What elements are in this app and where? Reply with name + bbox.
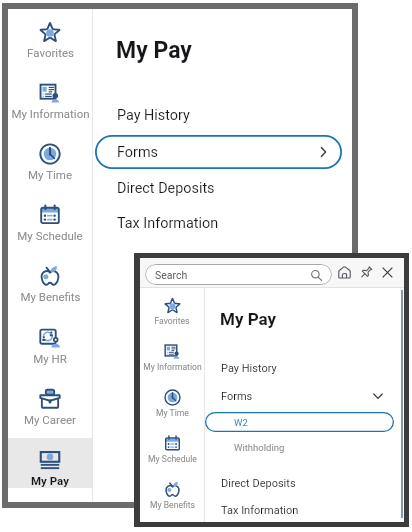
button[interactable]: My Benefits [8, 254, 92, 304]
staticText: Search [155, 269, 188, 281]
button[interactable]: My Schedule [140, 429, 204, 465]
button[interactable]: Close [377, 262, 398, 283]
button[interactable]: My Time [140, 383, 204, 419]
staticText: My Time [28, 168, 72, 181]
staticText: My Pay [31, 474, 69, 487]
staticText: Forms [117, 144, 158, 161]
staticText: Favorites [27, 46, 74, 59]
staticText: Tax Information [221, 504, 299, 517]
button[interactable]: My Career [8, 377, 92, 427]
button[interactable]: Tax Information [95, 206, 342, 240]
staticText: Tax Information [117, 215, 219, 232]
button[interactable]: My Pay [8, 438, 92, 488]
staticText: My HR [33, 352, 67, 365]
staticText: My Time [156, 408, 189, 418]
button[interactable]: Favorites [140, 291, 204, 327]
button[interactable]: My Information [8, 71, 92, 121]
button[interactable]: Direct Deposits [205, 471, 394, 495]
button[interactable]: Forms [205, 384, 394, 408]
button[interactable]: My Time [8, 132, 92, 182]
staticText: My Schedule [148, 454, 197, 464]
staticText: My Benefits [20, 290, 81, 303]
button[interactable]: My HR [8, 316, 92, 366]
staticText: Direct Deposits [117, 180, 215, 197]
button[interactable]: Favorites [8, 10, 92, 60]
button[interactable]: Withholding [205, 435, 394, 459]
staticText: My Schedule [17, 229, 83, 242]
staticText: Direct Deposits [221, 477, 296, 490]
staticText: W2 [234, 417, 248, 428]
button[interactable]: W2 [205, 410, 394, 434]
staticText: My Information [143, 362, 202, 372]
staticText: Favorites [154, 316, 190, 326]
staticText: My Pay [220, 309, 277, 329]
button[interactable]: Pay History [205, 356, 394, 380]
staticText: Forms [221, 390, 253, 403]
button[interactable]: My Information [140, 337, 204, 373]
button[interactable]: Pin [356, 262, 377, 283]
staticText: Pay History [221, 362, 277, 375]
staticText: Withholding [234, 442, 285, 453]
staticText: My Information [11, 107, 90, 120]
staticText: My Career [24, 413, 76, 426]
button[interactable]: Tax Information [205, 498, 394, 522]
staticText: My Pay [116, 37, 192, 64]
button[interactable]: Forms [95, 135, 342, 169]
button[interactable]: Search [306, 265, 326, 285]
staticText: My Benefits [150, 500, 195, 510]
button[interactable]: Pay History [95, 98, 342, 132]
button[interactable]: My Benefits [140, 475, 204, 511]
staticText: Pay History [117, 107, 190, 124]
button[interactable]: Direct Deposits [95, 171, 342, 205]
button[interactable]: My Schedule [8, 193, 92, 243]
button[interactable]: Search [145, 264, 332, 285]
button[interactable]: Home [334, 262, 355, 283]
